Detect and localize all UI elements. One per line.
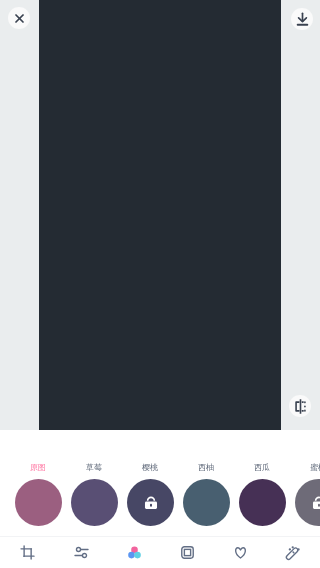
button[interactable]: Favorite xyxy=(214,537,267,568)
staticText: 西柚 xyxy=(198,462,214,472)
button[interactable]: 蜜桃 xyxy=(290,460,320,530)
staticText: 西瓜 xyxy=(254,462,270,472)
staticText: 樱桃 xyxy=(142,462,158,472)
button[interactable]: 西柚 xyxy=(178,460,234,530)
button[interactable]: 草莓 xyxy=(66,460,122,530)
button[interactable]: 原图 xyxy=(10,460,66,530)
staticText: 原图 xyxy=(30,462,46,472)
button[interactable]: 西瓜 xyxy=(234,460,290,530)
staticText: 草莓 xyxy=(86,462,102,472)
button[interactable]: 樱桃 xyxy=(122,460,178,530)
button[interactable]: Download xyxy=(291,8,313,30)
button[interactable]: Frame xyxy=(161,537,214,568)
button[interactable]: Retouch xyxy=(267,537,320,568)
button[interactable]: Crop xyxy=(0,537,54,568)
button[interactable]: Filters xyxy=(108,537,161,568)
button[interactable]: Compare original xyxy=(289,395,311,417)
button[interactable]: Close xyxy=(8,7,30,29)
button[interactable]: Adjust xyxy=(54,537,108,568)
staticText: 蜜桃 xyxy=(310,462,320,472)
